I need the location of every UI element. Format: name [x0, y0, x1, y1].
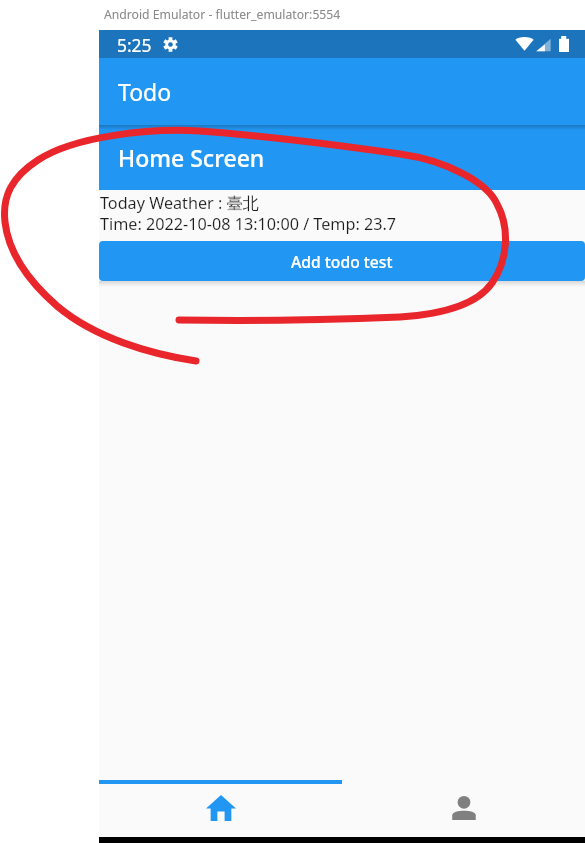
staticText: Time: 2022-10-08 13:10:00 / Temp: 23.7	[100, 213, 397, 235]
button[interactable]: Home	[99, 780, 342, 837]
staticText: Todo	[118, 76, 172, 107]
staticText: Home Screen	[118, 142, 265, 173]
button[interactable]: Add todo test	[99, 241, 585, 281]
other: Settings	[163, 37, 178, 52]
staticText: Android Emulator - flutter_emulator:5554	[104, 6, 341, 23]
button[interactable]: Profile	[342, 780, 585, 837]
staticText: Today Weather : 臺北	[100, 192, 259, 214]
staticText: Add todo test	[291, 251, 393, 272]
staticText: 5:25	[117, 33, 152, 57]
